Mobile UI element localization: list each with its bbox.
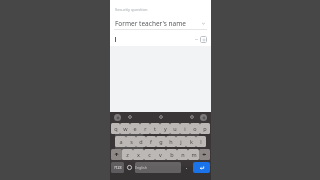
button[interactable]: j [176,136,186,147]
button[interactable]: e [130,123,140,134]
button[interactable]: Sticker [158,114,164,120]
button[interactable]: Shift [111,149,122,160]
staticText: e [133,125,137,132]
staticText: j [180,138,182,145]
button[interactable]: g [156,136,166,147]
staticText: n [181,151,185,158]
button[interactable]: n [177,149,188,160]
staticText: Former teacher's name [115,19,201,28]
staticText: . [186,164,188,171]
button[interactable]: s [126,136,136,147]
staticText: d [139,138,143,145]
button[interactable]: x [133,149,144,160]
button[interactable]: k [186,136,196,147]
staticText: c [148,151,151,158]
staticText: English [135,165,181,170]
button[interactable]: Former teacher's name [110,17,211,29]
staticText: s [130,138,133,145]
button[interactable]: Show password [110,33,211,45]
button[interactable]: Space [135,162,181,173]
staticText: r [144,125,147,132]
staticText: b [170,151,174,158]
button[interactable]: Settings [189,114,195,120]
button[interactable]: q [111,123,120,134]
staticText: f [150,138,152,145]
button[interactable]: v [155,149,166,160]
button[interactable]: m [188,149,199,160]
button[interactable]: h [166,136,176,147]
staticText: h [169,138,173,145]
staticText: l [200,138,202,145]
button[interactable]: ?123 [111,162,124,173]
button[interactable]: l [196,136,206,147]
button[interactable]: i [180,123,190,134]
button[interactable]: o [190,123,200,134]
button[interactable]: t [150,123,160,134]
button[interactable]: f [146,136,156,147]
staticText: i [184,125,186,132]
button[interactable]: b [166,149,177,160]
button[interactable]: Google apps [114,114,121,121]
button[interactable]: y [160,123,170,134]
staticText: w [123,125,128,132]
button[interactable]: r [140,123,150,134]
button[interactable]: u [170,123,180,134]
button[interactable]: Emoji [125,162,134,173]
button[interactable]: Backspace [199,149,210,160]
button[interactable]: d [136,136,146,147]
staticText: u [173,125,177,132]
staticText: t [154,125,156,132]
staticText: p [203,125,207,132]
button[interactable]: c [144,149,155,160]
staticText: k [190,138,193,145]
staticText: g [159,138,163,145]
staticText: y [164,125,167,132]
button[interactable]: . [182,162,192,173]
button[interactable]: Enter [193,162,210,173]
button[interactable]: w [120,123,130,134]
staticText: x [137,151,140,158]
staticText: q [114,125,118,132]
staticText: v [159,151,162,158]
button[interactable]: a [115,136,126,147]
button[interactable]: GIF [127,114,133,120]
button[interactable]: p [200,123,210,134]
staticText: ?123 [114,165,122,170]
staticText: m [191,151,197,158]
staticText: z [126,151,129,158]
button[interactable]: More options [200,114,207,121]
staticText: a [119,138,123,145]
button[interactable]: z [122,149,133,160]
staticText: Security question [115,7,148,12]
button[interactable]: Show password [200,36,207,43]
staticText: o [193,125,197,132]
